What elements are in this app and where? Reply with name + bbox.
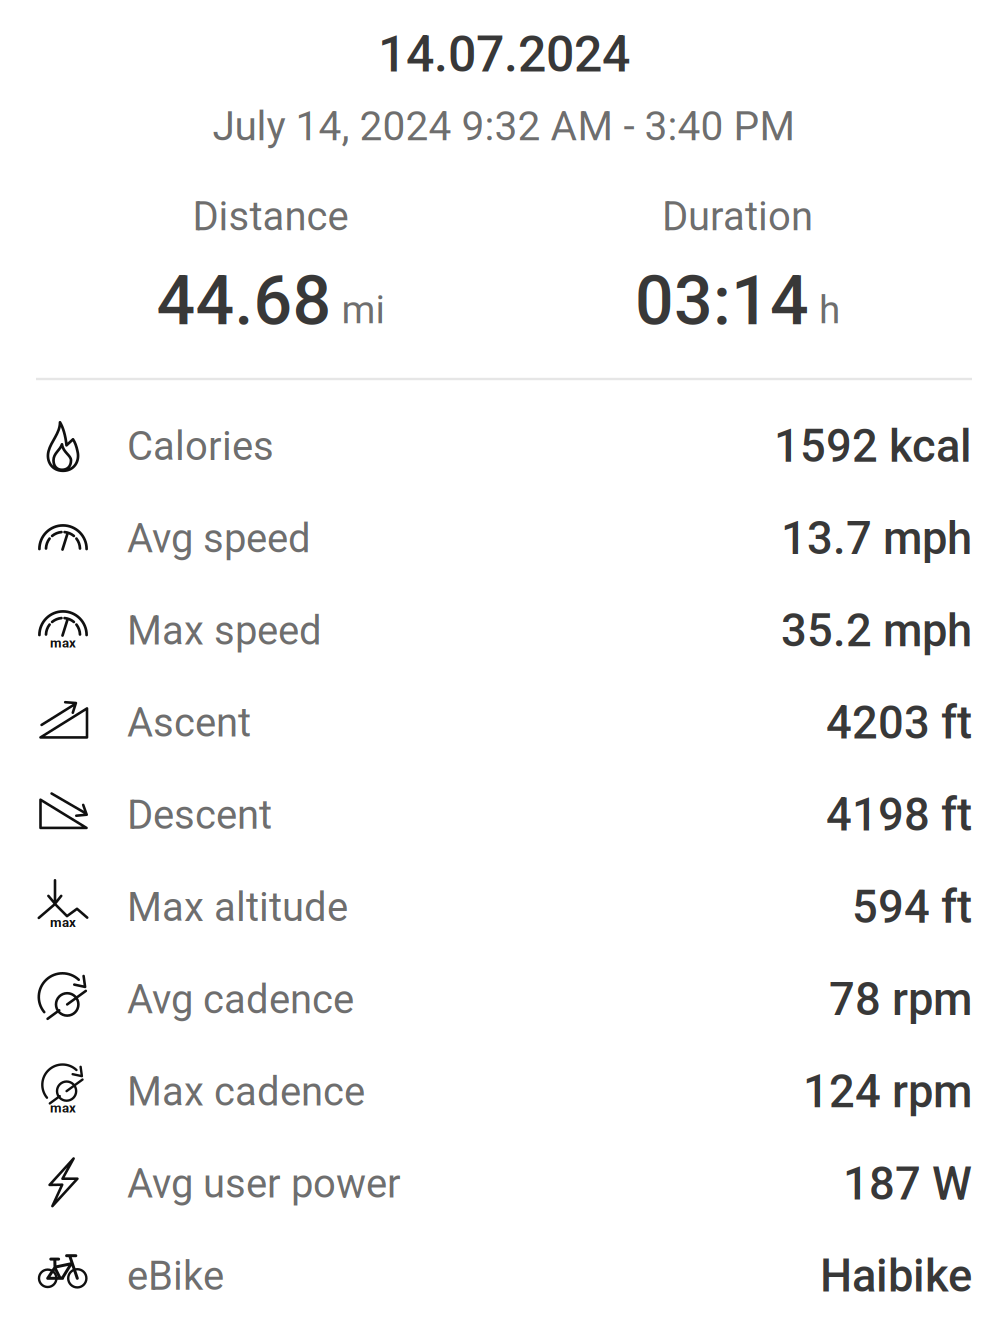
button[interactable]: Calories [0, 400, 1008, 492]
staticText: Calories [127, 423, 274, 470]
staticText: Avg user power [127, 1160, 401, 1207]
button[interactable]: max [0, 1046, 1008, 1138]
staticText: max [50, 1100, 76, 1116]
staticText: max [50, 915, 76, 930]
staticText: 594 ft [852, 881, 972, 934]
button[interactable]: Avg user power [0, 1138, 1008, 1230]
button[interactable]: max [0, 585, 1008, 677]
staticText: 13.7 mph [781, 512, 972, 565]
staticText: Avg cadence [127, 976, 354, 1023]
staticText: 1592 kcal [774, 420, 972, 473]
staticText: h [819, 287, 840, 333]
staticText: Max cadence [127, 1068, 365, 1115]
staticText: 44.68 [156, 261, 331, 341]
staticText: 78 rpm [829, 973, 972, 1026]
button[interactable]: Descent [0, 769, 1008, 861]
button[interactable]: eBike [0, 1230, 1008, 1322]
staticText: Haibike [820, 1250, 972, 1303]
staticText: Max speed [127, 607, 322, 654]
button[interactable]: Avg cadence [0, 953, 1008, 1046]
staticText: 03:14 [635, 261, 809, 341]
staticText: max [50, 635, 76, 651]
staticText: 35.2 mph [781, 604, 972, 657]
staticText: 14.07.2024 [378, 25, 630, 84]
staticText: 4203 ft [826, 696, 972, 749]
staticText: July 14, 2024 9:32 AM - 3:40 PM [212, 103, 795, 150]
button[interactable]: Ascent [0, 677, 1008, 769]
staticText: mi [341, 287, 384, 333]
staticText: Ascent [127, 699, 251, 746]
staticText: 4198 ft [826, 789, 972, 842]
staticText: Max altitude [127, 884, 348, 931]
staticText: Avg speed [127, 515, 311, 562]
button[interactable]: max [0, 861, 1008, 953]
staticText: eBike [127, 1253, 224, 1300]
staticText: Duration [662, 193, 813, 240]
button[interactable]: Avg speed [0, 492, 1008, 585]
staticText: Descent [127, 792, 272, 839]
staticText: 124 rpm [803, 1065, 972, 1118]
staticText: Distance [192, 193, 348, 240]
staticText: 187 W [843, 1157, 972, 1210]
